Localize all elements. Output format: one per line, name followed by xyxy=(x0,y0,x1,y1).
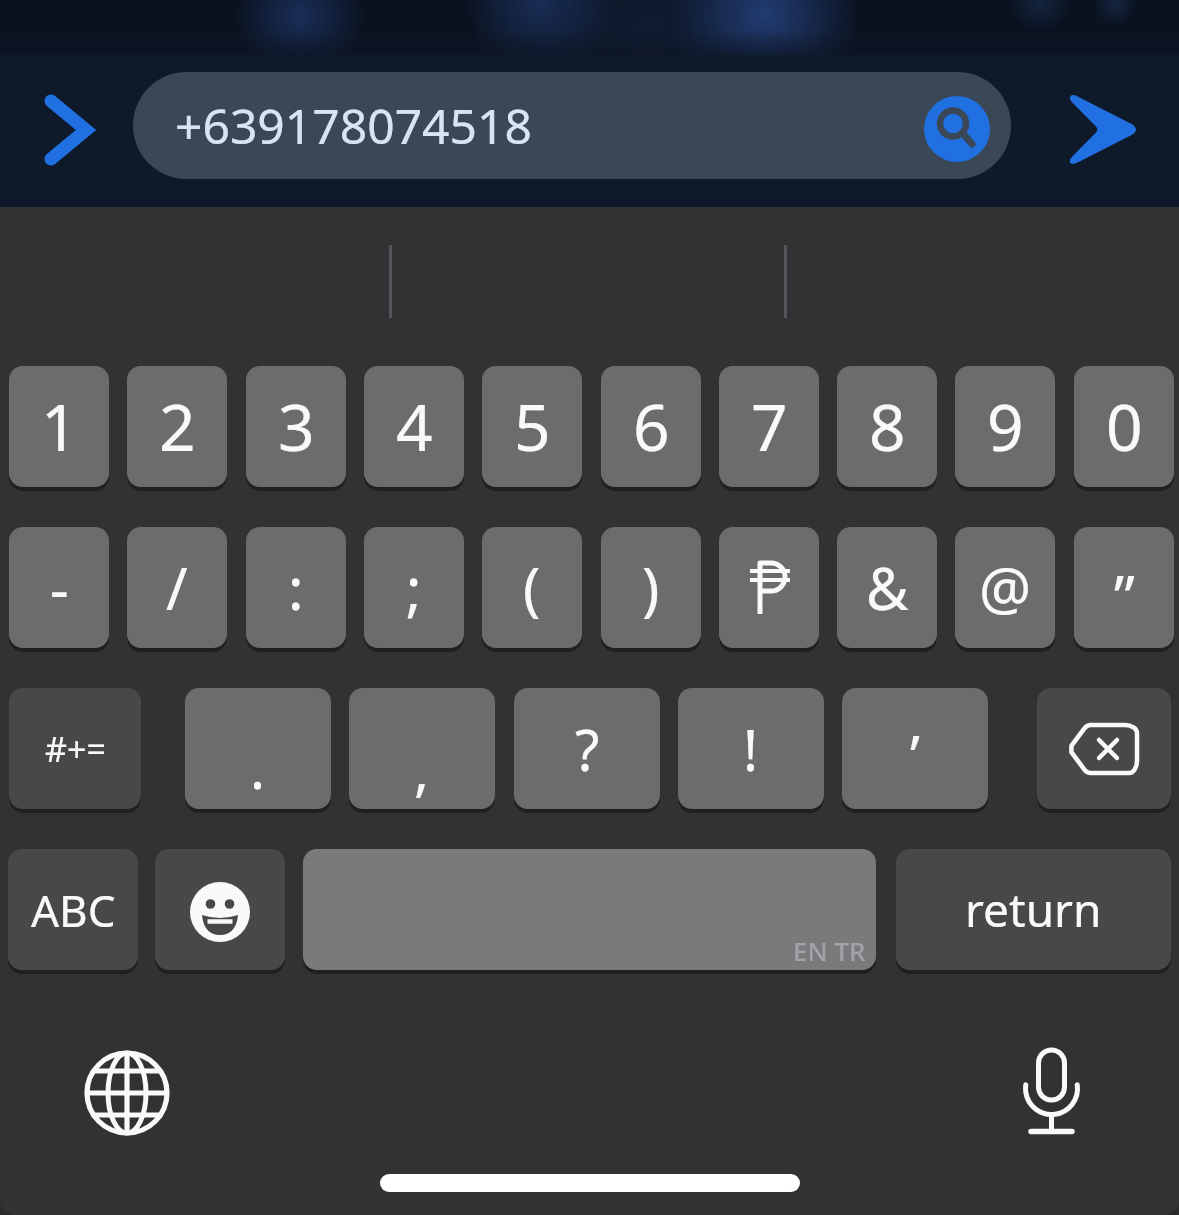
staticText: ? xyxy=(575,711,600,787)
staticText: 3 xyxy=(278,383,315,470)
button[interactable]: , xyxy=(349,688,495,809)
staticText: ; xyxy=(406,548,422,627)
button[interactable]: 0 xyxy=(1074,366,1174,487)
staticText: ) xyxy=(642,548,660,627)
button[interactable]: ( xyxy=(482,527,582,648)
button[interactable] xyxy=(1016,1040,1088,1140)
button[interactable]: +639178074518 xyxy=(133,72,1011,179)
button[interactable]: ? xyxy=(514,688,660,809)
button[interactable]: ” xyxy=(1074,527,1174,648)
staticText: ” xyxy=(1114,556,1135,635)
staticText: 8 xyxy=(869,383,906,470)
button[interactable]: return xyxy=(896,849,1171,970)
button[interactable]: ; xyxy=(364,527,464,648)
staticText: #+= xyxy=(45,726,106,772)
staticText: , xyxy=(414,731,430,807)
staticText: ’ xyxy=(910,717,920,793)
button[interactable]: : xyxy=(246,527,346,648)
staticText: ( xyxy=(523,548,541,627)
button[interactable]: 2 xyxy=(127,366,227,487)
staticText: return xyxy=(965,878,1102,941)
button[interactable]: #+= xyxy=(9,688,141,809)
staticText: 4 xyxy=(396,383,433,470)
button[interactable] xyxy=(44,94,94,164)
staticText: +639178074518 xyxy=(175,93,532,158)
button[interactable]: ! xyxy=(678,688,824,809)
button[interactable] xyxy=(303,849,876,970)
staticText: ABC xyxy=(31,880,116,940)
staticText: EN TR xyxy=(793,933,866,968)
button[interactable]: ) xyxy=(601,527,701,648)
button[interactable] xyxy=(155,849,285,970)
staticText: ! xyxy=(743,711,759,787)
button[interactable]: 4 xyxy=(364,366,464,487)
button[interactable]: / xyxy=(127,527,227,648)
staticText: 7 xyxy=(751,383,788,470)
button[interactable]: @ xyxy=(955,527,1055,648)
button[interactable] xyxy=(1037,688,1171,809)
staticText: 9 xyxy=(987,383,1024,470)
button[interactable]: ’ xyxy=(842,688,988,809)
button[interactable]: . xyxy=(185,688,331,809)
button[interactable]: - xyxy=(9,527,109,648)
button[interactable]: 1 xyxy=(9,366,109,487)
button[interactable] xyxy=(924,96,990,162)
staticText: 5 xyxy=(514,383,551,470)
button[interactable]: 6 xyxy=(601,366,701,487)
button[interactable]: 7 xyxy=(719,366,819,487)
staticText: @ xyxy=(979,548,1032,627)
staticText: - xyxy=(50,548,69,627)
staticText: / xyxy=(166,548,188,627)
button[interactable]: & xyxy=(837,527,937,648)
button[interactable]: 5 xyxy=(482,366,582,487)
button[interactable]: ABC xyxy=(8,849,138,970)
staticText: 2 xyxy=(159,383,196,470)
staticText: 6 xyxy=(633,383,670,470)
button[interactable] xyxy=(719,527,819,648)
staticText: 0 xyxy=(1106,383,1143,470)
button[interactable] xyxy=(83,1049,171,1137)
button[interactable]: 8 xyxy=(837,366,937,487)
staticText: & xyxy=(866,548,909,627)
button[interactable]: 3 xyxy=(246,366,346,487)
staticText: 1 xyxy=(41,383,78,470)
staticText: : xyxy=(288,548,304,627)
staticText: . xyxy=(250,729,266,805)
button[interactable]: 9 xyxy=(955,366,1055,487)
button[interactable] xyxy=(1060,88,1144,170)
